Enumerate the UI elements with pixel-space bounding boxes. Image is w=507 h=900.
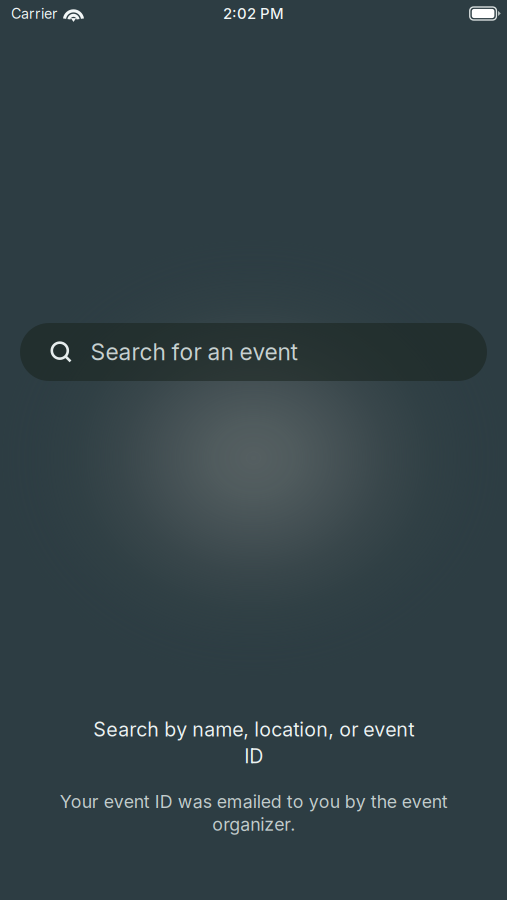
staticText: Search by name, location, or event ID [93, 717, 414, 768]
staticText: Your event ID was emailed to you by the … [59, 791, 447, 835]
staticText: 2:02 PM [223, 4, 284, 23]
staticText: Search for an event [91, 338, 298, 366]
staticText: Carrier [11, 5, 57, 22]
button[interactable]: Search for an event [20, 323, 487, 381]
